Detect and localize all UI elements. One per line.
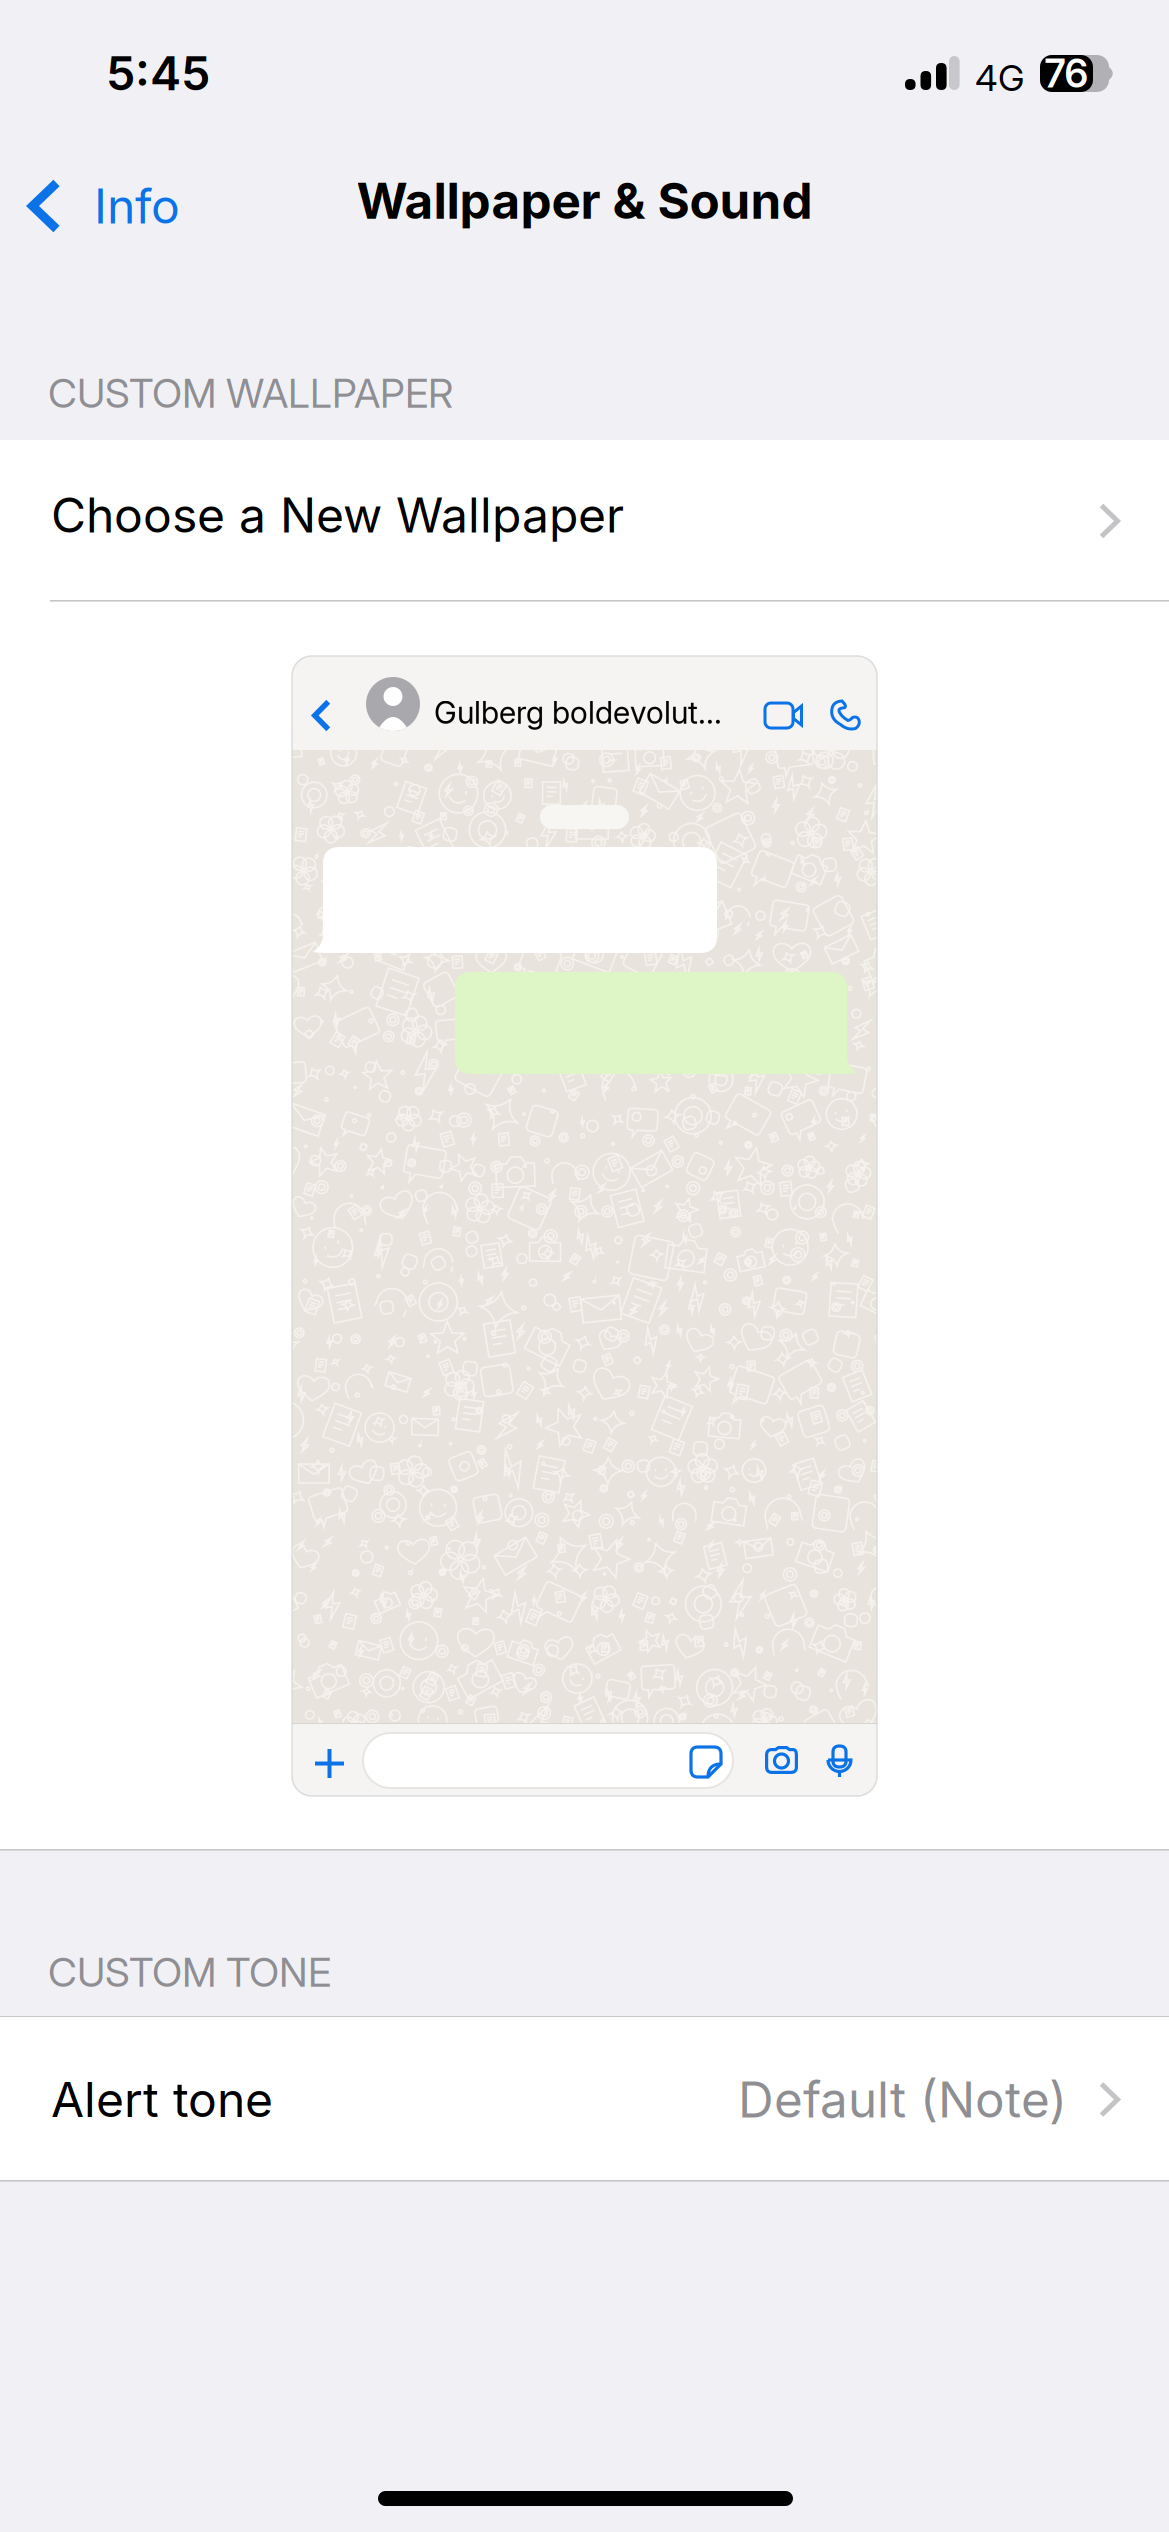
staticText: Default (Note) bbox=[738, 2070, 1067, 2129]
staticText: Wallpaper & Sound bbox=[356, 171, 812, 231]
button[interactable]: Alert tone bbox=[0, 2018, 1169, 2181]
staticText: Alert tone bbox=[51, 2070, 273, 2129]
staticText: 76 bbox=[1044, 50, 1088, 97]
button[interactable]: Info bbox=[0, 160, 200, 252]
staticText: Gulberg boldevolut... bbox=[434, 694, 722, 731]
staticText: Choose a New Wallpaper bbox=[51, 486, 624, 544]
staticText: 4G bbox=[975, 56, 1024, 100]
button[interactable]: Choose a New Wallpaper bbox=[0, 441, 1169, 601]
staticText: Info bbox=[94, 177, 180, 235]
staticText: CUSTOM WALLPAPER bbox=[48, 369, 453, 417]
staticText: CUSTOM TONE bbox=[48, 1948, 331, 1996]
staticText: 5:45 bbox=[106, 45, 210, 101]
